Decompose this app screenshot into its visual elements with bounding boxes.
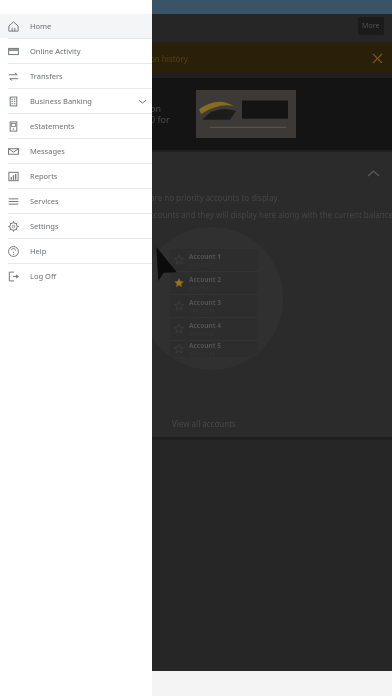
staticText: Log Off [30, 271, 57, 281]
button[interactable]: Account 2 [174, 272, 254, 294]
button[interactable]: Account 1 [174, 249, 254, 271]
staticText: Services [30, 196, 59, 206]
button[interactable]: Dismiss alert [368, 49, 386, 67]
staticText: More [362, 21, 380, 31]
button[interactable]: Services [0, 189, 152, 213]
button[interactable]: Account 3 [174, 295, 254, 317]
staticText: Online Activity [30, 46, 81, 56]
staticText: Account 2 [189, 275, 221, 284]
button[interactable]: eStatements [0, 114, 152, 138]
button[interactable]: Transfers [0, 64, 152, 88]
button[interactable]: on 0 for [0, 78, 392, 150]
staticText: on history. [150, 53, 190, 64]
button[interactable]: Online Activity [0, 39, 152, 63]
button[interactable]: Help [0, 239, 152, 263]
staticText: are no priority accounts to display. [150, 192, 280, 203]
staticText: ccounts and they will display here along… [150, 209, 392, 220]
staticText: Messages [30, 146, 65, 156]
staticText: Home [30, 21, 52, 31]
staticText: Account 4 [189, 321, 221, 330]
staticText: Business Banking [30, 96, 92, 106]
button[interactable]: Collapse [362, 162, 384, 184]
button[interactable]: Messages [0, 139, 152, 163]
staticText: Help [30, 246, 47, 256]
button[interactable]: Account 4 [174, 318, 254, 340]
button[interactable]: Account 5 [174, 341, 254, 357]
button[interactable]: More [358, 17, 384, 35]
button[interactable]: Log Off [0, 264, 152, 288]
button[interactable]: Home [0, 14, 152, 38]
staticText: Account 1 [189, 252, 221, 261]
button[interactable]: View all accounts [172, 418, 236, 429]
staticText: Account 5 [189, 341, 221, 350]
staticText: Reports [30, 171, 58, 181]
button[interactable]: Settings [0, 214, 152, 238]
staticText: Settings [30, 221, 59, 231]
staticText: on 0 for [150, 102, 170, 126]
staticText: eStatements [30, 121, 75, 131]
staticText: Account 3 [189, 298, 221, 307]
staticText: Transfers [30, 71, 63, 81]
button[interactable]: Reports [0, 164, 152, 188]
button[interactable]: Business Banking [0, 89, 152, 113]
